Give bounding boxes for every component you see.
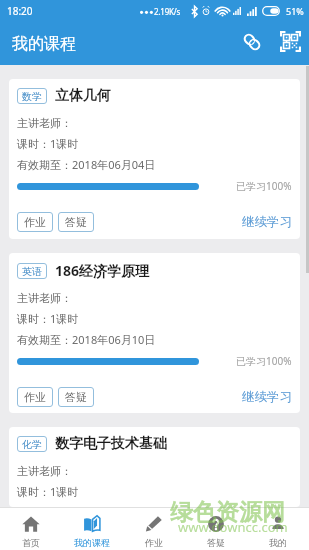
button[interactable]: Scan QR code [271, 22, 309, 65]
button[interactable]: 答疑 [185, 508, 247, 550]
button[interactable]: Share link [233, 22, 271, 65]
button[interactable]: 答疑 [58, 212, 94, 232]
button[interactable]: 作业 [17, 387, 53, 407]
staticText: 主讲老师： [17, 116, 72, 130]
staticText: 主讲老师： [17, 291, 72, 305]
staticText: 作业 [145, 537, 163, 548]
button[interactable]: 继续学习 [242, 386, 292, 408]
staticText: 化学 [22, 438, 42, 451]
staticText: 186经济学原理 [55, 261, 150, 280]
staticText: 答疑 [207, 537, 225, 548]
staticText: 继续学习 [242, 214, 292, 230]
button[interactable]: 首页 [0, 508, 61, 550]
button[interactable]: 作业 [17, 212, 53, 232]
button[interactable]: 我的课程 [61, 508, 123, 550]
staticText: 我的课程 [74, 537, 110, 548]
staticText: 18:20 [7, 4, 33, 18]
button[interactable]: 我的 [247, 508, 309, 550]
staticText: 首页 [22, 537, 40, 548]
staticText: 有效期至：2018年06月04日 [17, 157, 156, 172]
staticText: 继续学习 [242, 389, 292, 405]
button[interactable]: 化学 [9, 427, 300, 507]
staticText: 课时：1课时 [17, 136, 79, 151]
button[interactable]: 作业 [123, 508, 185, 550]
staticText: 立体几何 [55, 87, 111, 105]
staticText: 答疑 [65, 390, 87, 404]
staticText: 我的 [269, 537, 287, 548]
staticText: 英语 [22, 265, 42, 278]
staticText: 有效期至：2018年06月10日 [17, 332, 156, 347]
staticText: 作业 [24, 215, 46, 229]
staticText: 2.19K/s [154, 6, 181, 17]
staticText: 主讲老师： [17, 464, 72, 478]
staticText: 已学习100% [236, 179, 292, 193]
staticText: 绿色资源网 [170, 498, 285, 527]
staticText: 作业 [24, 390, 46, 404]
staticText: 课时：1课时 [17, 311, 79, 326]
button[interactable]: 英语 [9, 253, 300, 413]
button[interactable]: 继续学习 [242, 211, 292, 233]
staticText: 数学 [22, 90, 42, 103]
staticText: 答疑 [65, 215, 87, 229]
button[interactable]: 答疑 [58, 387, 94, 407]
staticText: 已学习100% [236, 354, 292, 368]
staticText: 我的课程 [12, 34, 76, 54]
staticText: 数字电子技术基础 [55, 435, 167, 453]
staticText: www.downcc.com [178, 518, 288, 536]
staticText: 课时：1课时 [17, 484, 79, 499]
staticText: 51% [286, 5, 304, 17]
button[interactable]: 数学 [9, 79, 300, 239]
